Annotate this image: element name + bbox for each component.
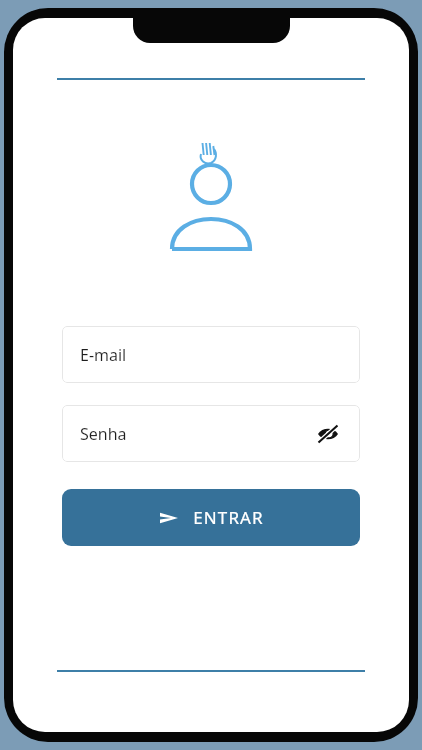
button[interactable]: Senha bbox=[62, 405, 360, 462]
button[interactable]: Mostrar senha bbox=[314, 420, 342, 448]
staticText: E-mail bbox=[80, 344, 127, 366]
button[interactable]: E-mail bbox=[62, 326, 360, 383]
other: Usuário bbox=[151, 136, 271, 266]
staticText: Senha bbox=[80, 423, 127, 445]
button[interactable]: ENTRAR bbox=[62, 489, 360, 546]
staticText: ENTRAR bbox=[193, 506, 264, 529]
